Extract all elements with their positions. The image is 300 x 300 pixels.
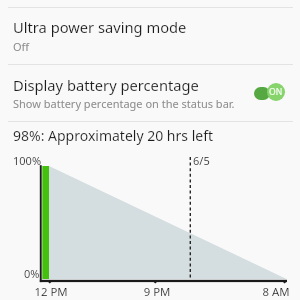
- staticText: 12 PM: [21, 284, 81, 300]
- staticText: Off: [13, 39, 30, 54]
- staticText: 6/5: [193, 153, 210, 168]
- button[interactable]: Display battery percentage: [0, 65, 300, 121]
- staticText: Display battery percentage: [13, 75, 199, 95]
- staticText: 8 AM: [246, 284, 300, 300]
- staticText: ON: [269, 86, 283, 98]
- staticText: 9 PM: [127, 284, 187, 300]
- staticText: 98%: Approximately 20 hrs left: [13, 126, 214, 145]
- staticText: 100%: [13, 153, 42, 168]
- staticText: 0%: [24, 266, 40, 281]
- button[interactable]: Ultra power saving mode: [0, 8, 300, 64]
- staticText: Ultra power saving mode: [13, 17, 187, 37]
- staticText: Show battery percentage on the status ba…: [13, 96, 235, 111]
- button[interactable]: Display battery percentage, on: [248, 76, 292, 104]
